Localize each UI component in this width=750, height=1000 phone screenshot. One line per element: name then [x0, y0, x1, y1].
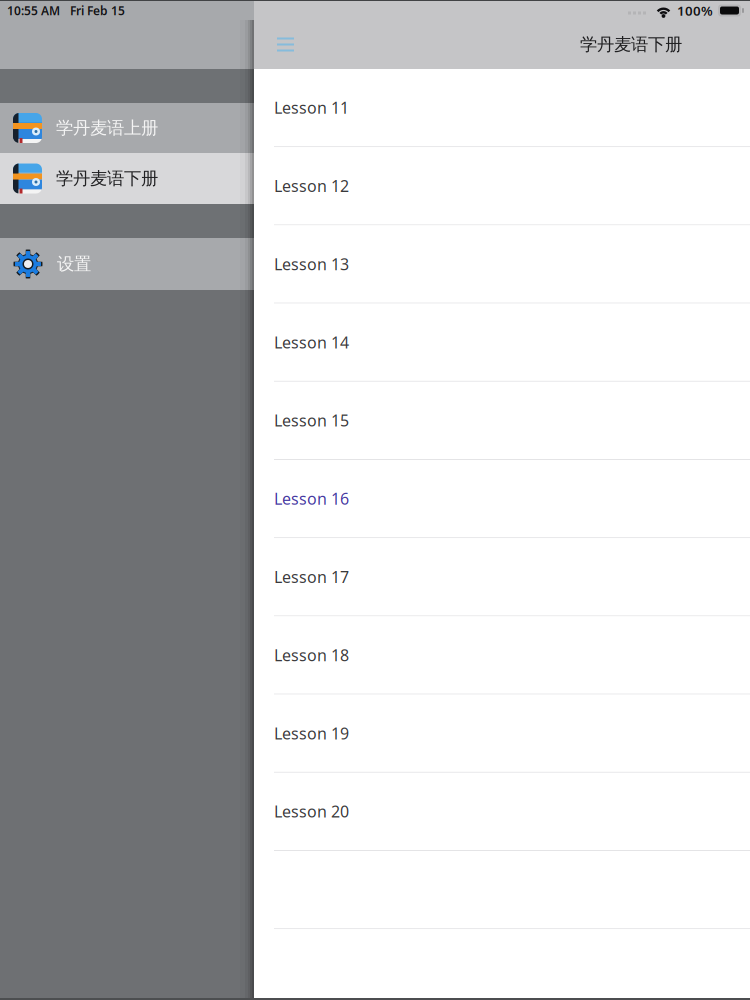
button[interactable]: 学丹麦语上册	[0, 103, 254, 153]
staticText: 100%	[677, 2, 713, 19]
staticText: Lesson 18	[274, 644, 349, 666]
button[interactable]: 设置	[0, 238, 254, 290]
button[interactable]: 学丹麦语下册	[0, 153, 254, 204]
staticText: Lesson 14	[274, 332, 349, 353]
button[interactable]: Lesson 20	[254, 773, 750, 851]
staticText: Lesson 15	[274, 410, 349, 431]
staticText: 学丹麦语上册	[56, 117, 158, 139]
staticText: Lesson 13	[274, 253, 349, 275]
staticText: Lesson 19	[274, 723, 349, 744]
staticText: 10:55 AM	[7, 2, 60, 18]
button[interactable]: Lesson 13	[254, 225, 750, 304]
staticText: Lesson 16	[274, 488, 349, 509]
button[interactable]: Lesson 11	[254, 69, 750, 147]
staticText: Lesson 11	[274, 97, 349, 118]
staticText: Lesson 17	[274, 566, 349, 587]
staticText: Lesson 12	[274, 175, 349, 196]
button[interactable]: Lesson 18	[254, 616, 750, 695]
staticText: Fri Feb 15	[70, 2, 125, 18]
button[interactable]: Lesson 16	[254, 460, 750, 538]
button[interactable]: Menu	[262, 20, 309, 69]
button[interactable]: Lesson 15	[254, 382, 750, 460]
button[interactable]: Lesson 14	[254, 304, 750, 382]
button[interactable]: Lesson 12	[254, 147, 750, 225]
staticText: 学丹麦语下册	[56, 168, 158, 189]
staticText: 设置	[57, 253, 91, 275]
staticText: Lesson 20	[274, 801, 349, 822]
staticText: 学丹麦语下册	[580, 34, 682, 55]
button[interactable]: Lesson 17	[254, 538, 750, 616]
button[interactable]: Lesson 19	[254, 695, 750, 773]
